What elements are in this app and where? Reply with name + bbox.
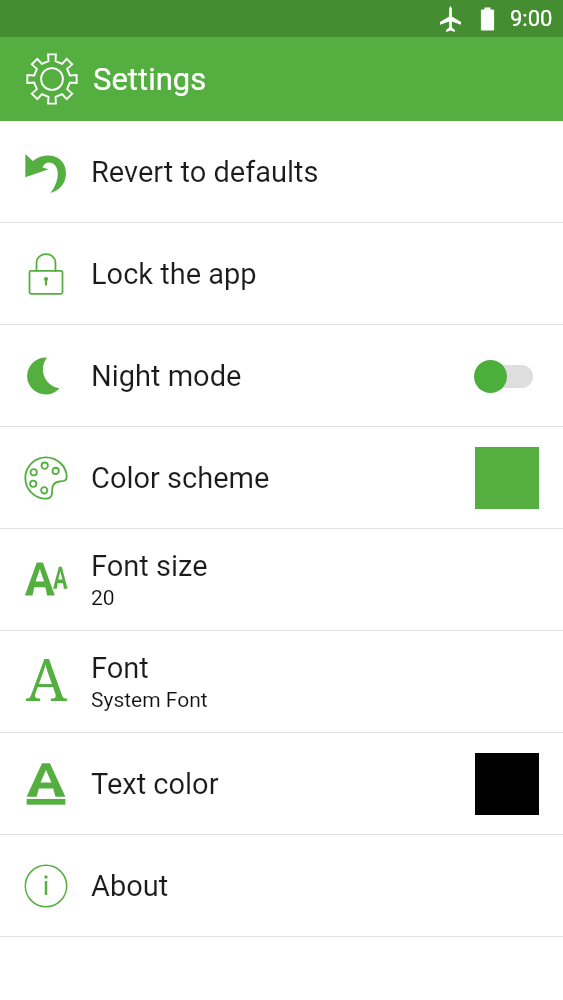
staticText: Lock the app (91, 257, 257, 291)
button[interactable]: Night mode (474, 356, 539, 396)
button[interactable]: A (0, 631, 563, 733)
staticText: Color scheme (91, 461, 270, 495)
staticText: System Font (91, 688, 208, 713)
button[interactable]: Font size (0, 529, 563, 631)
staticText: 20 (91, 586, 115, 611)
button[interactable]: Lock the app (0, 223, 563, 325)
button[interactable]: Color scheme (0, 427, 563, 529)
staticText: Settings (93, 61, 207, 97)
button[interactable]: Revert to defaults (0, 121, 563, 223)
staticText: A (26, 639, 67, 718)
staticText: Night mode (91, 359, 242, 393)
staticText: 9:00 (510, 6, 553, 32)
button[interactable]: About (0, 835, 563, 937)
staticText: About (91, 869, 169, 903)
button[interactable]: Text color (0, 733, 563, 835)
button[interactable]: Night mode (0, 325, 563, 427)
staticText: Revert to defaults (91, 155, 319, 189)
staticText: Text color (91, 767, 219, 801)
staticText: Font (91, 651, 149, 685)
staticText: Font size (91, 549, 208, 583)
